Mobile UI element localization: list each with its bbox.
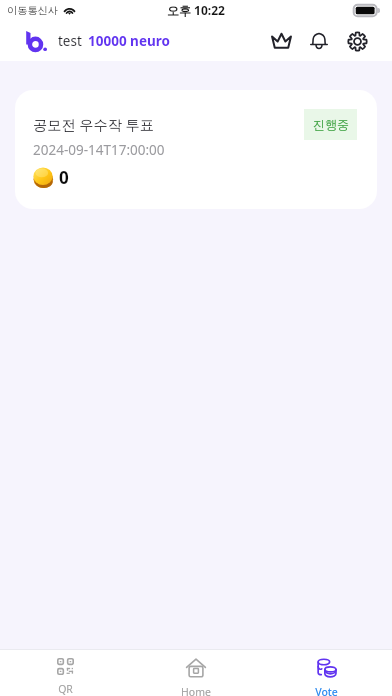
staticText: 2024-09-14T17:00:00 [33,141,165,159]
staticText: Home [181,685,211,696]
staticText: test [58,32,82,50]
button[interactable]: Ranking [266,26,296,56]
staticText: 진행중 [313,117,349,132]
button[interactable]: Notifications [304,26,334,56]
staticText: 0 [59,166,69,189]
staticText: Vote [315,685,338,696]
staticText: 오후 10:22 [167,2,225,18]
staticText: 이동통신사 [7,4,58,17]
staticText: QR [58,682,73,696]
button[interactable]: Settings [342,26,372,56]
button[interactable]: Vote [261,658,392,696]
button[interactable]: Home [130,658,261,696]
staticText: 10000 neuro [88,32,170,50]
button[interactable]: QR [0,658,130,696]
button[interactable]: 공모전 우수작 투표 [15,90,377,209]
staticText: 공모전 우수작 투표 [33,115,154,134]
